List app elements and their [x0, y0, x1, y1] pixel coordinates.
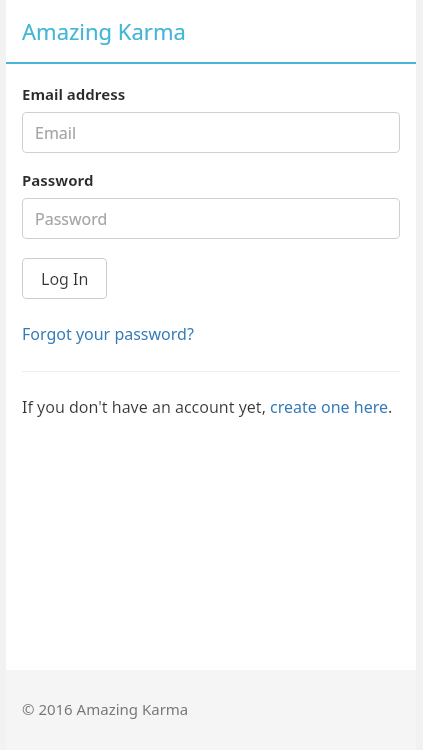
- staticText: Password: [35, 208, 108, 230]
- staticText: Forgot your password?: [22, 323, 194, 345]
- staticText: If you don't have an account yet, create…: [22, 396, 393, 418]
- staticText: © 2016 Amazing Karma: [22, 699, 189, 719]
- staticText: Password: [22, 170, 94, 190]
- button[interactable]: If you don't have an account yet, create…: [22, 396, 393, 418]
- button[interactable]: Password: [22, 198, 400, 239]
- button[interactable]: Amazing Karma: [22, 16, 186, 46]
- staticText: Amazing Karma: [22, 16, 186, 46]
- button[interactable]: Forgot your password?: [22, 323, 194, 345]
- button[interactable]: Email: [22, 112, 400, 153]
- staticText: Email: [35, 122, 77, 144]
- button[interactable]: Log In: [22, 258, 107, 299]
- staticText: Log In: [41, 268, 89, 290]
- staticText: Email address: [22, 84, 126, 104]
